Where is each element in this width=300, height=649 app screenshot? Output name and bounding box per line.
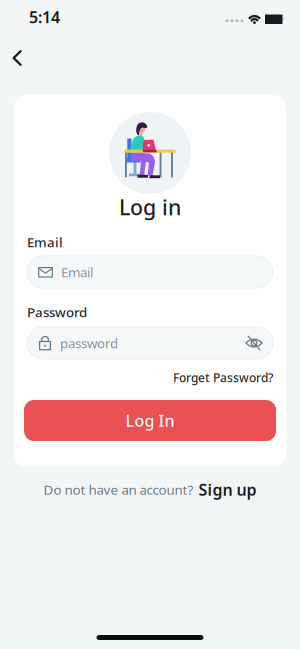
staticText: Email bbox=[27, 233, 63, 251]
button[interactable]: Show password bbox=[245, 335, 263, 351]
staticText: Forget Password? bbox=[173, 369, 273, 385]
button[interactable]: Log In bbox=[14, 400, 286, 441]
staticText: Password bbox=[27, 303, 87, 321]
staticText: Sign up bbox=[198, 479, 256, 500]
staticText: Do not have an account? bbox=[43, 481, 193, 498]
staticText: password bbox=[60, 334, 118, 352]
staticText: Log in bbox=[119, 193, 181, 221]
button[interactable]: Back bbox=[0, 50, 36, 66]
button[interactable]: Forget Password? bbox=[173, 369, 273, 385]
staticText: 5:14 bbox=[29, 6, 60, 28]
button[interactable]: Sign up bbox=[198, 479, 256, 500]
staticText: Log In bbox=[125, 410, 174, 431]
staticText: Email bbox=[61, 263, 93, 281]
